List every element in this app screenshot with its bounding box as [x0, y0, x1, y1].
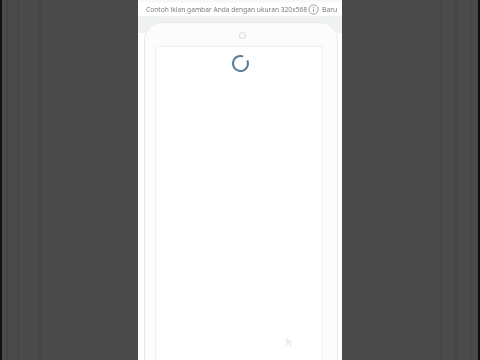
- button[interactable]: Contoh iklan gambar Anda dengan ukuran 3…: [146, 5, 308, 14]
- button[interactable]: Pratinjau perangkat: [144, 22, 338, 360]
- button[interactable]: Baru: [322, 5, 338, 14]
- button[interactable]: Info: [308, 4, 319, 15]
